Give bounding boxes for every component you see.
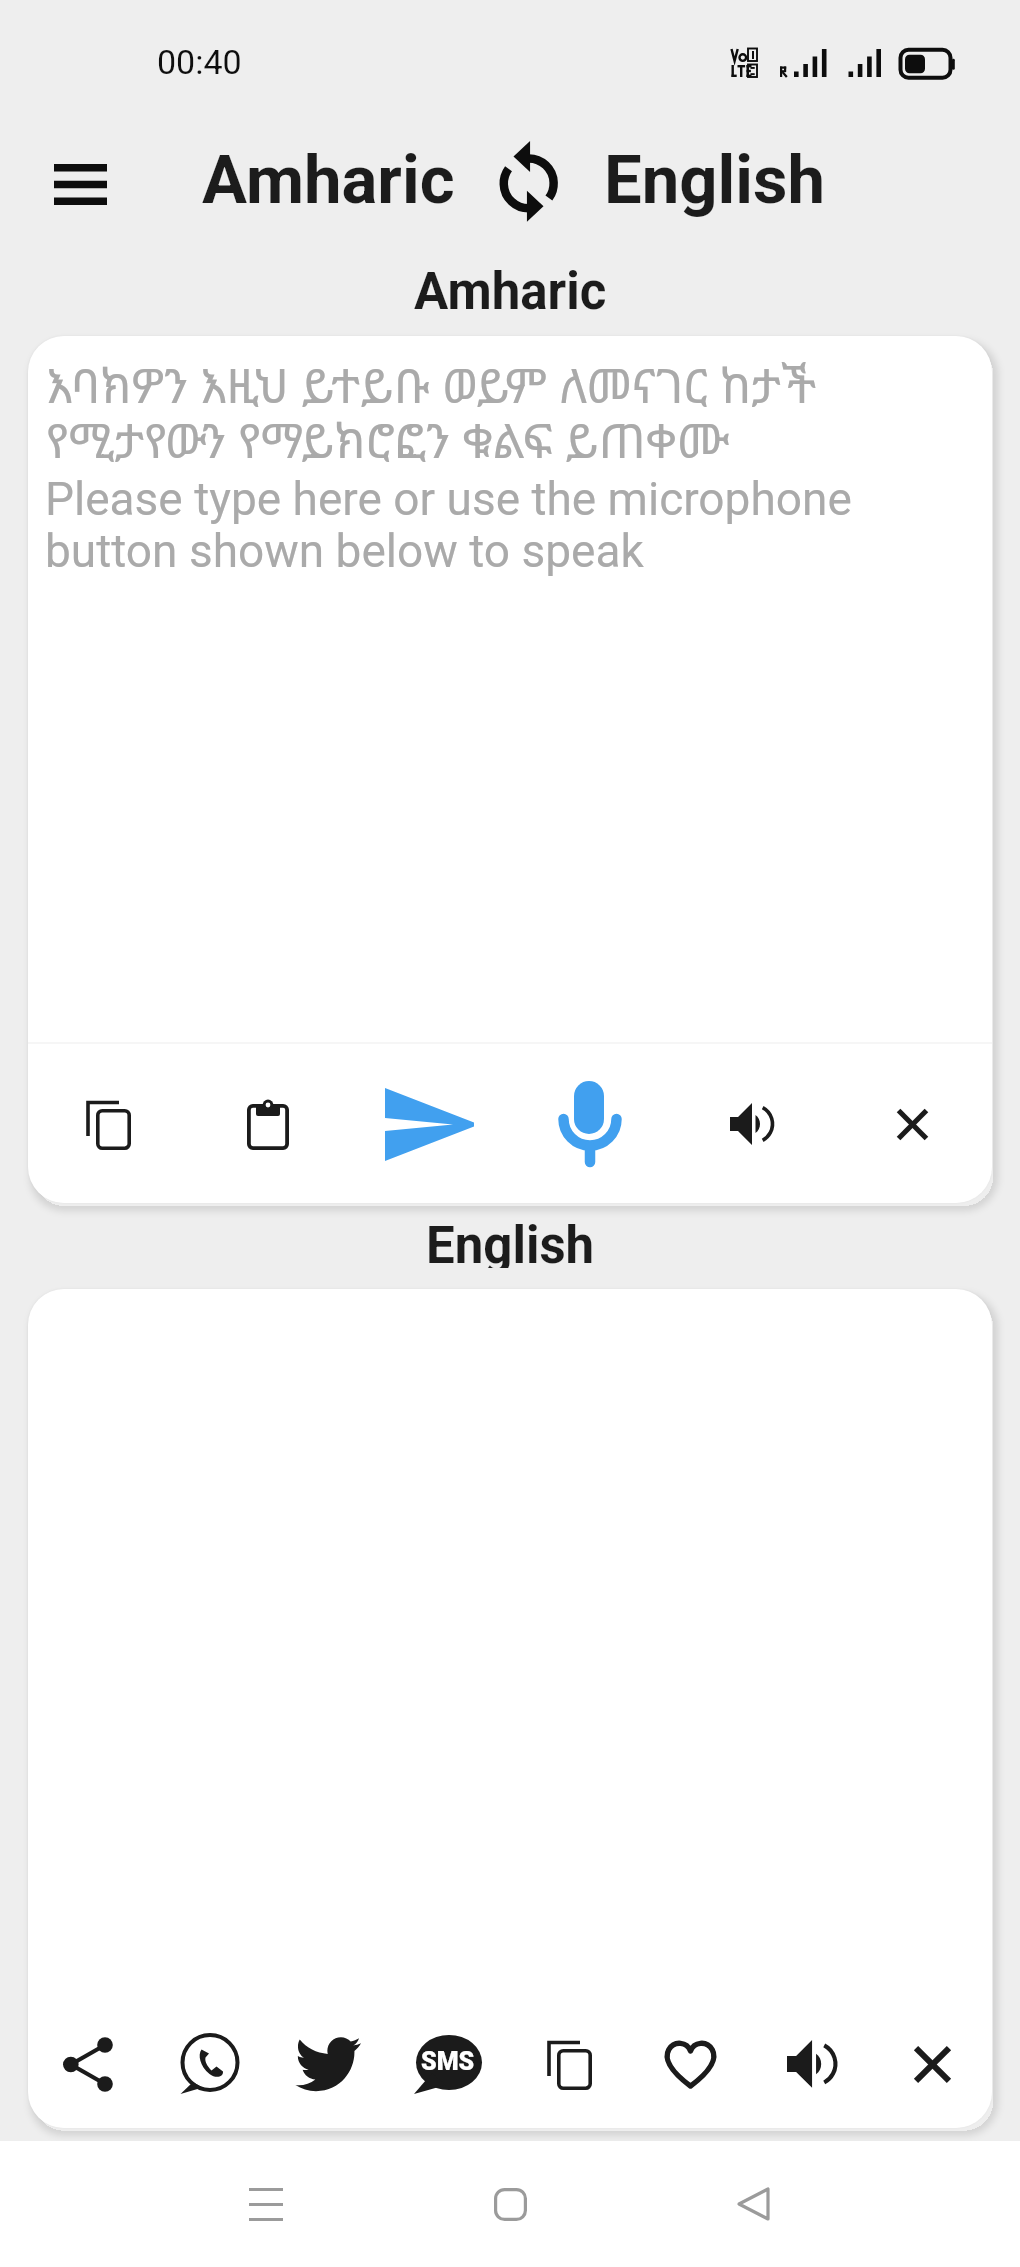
button[interactable]: Back <box>697 2148 809 2260</box>
button[interactable]: Clear <box>880 2012 984 2116</box>
button[interactable]: Share <box>36 2012 140 2116</box>
button[interactable]: Amharic <box>202 141 455 220</box>
staticText: Please type here or use the microphone b… <box>45 472 852 578</box>
button[interactable]: Copy <box>52 1068 164 1180</box>
staticText: እባክዎን እዚህ ይተይቡ ወይም ለመናገር ከታች <box>46 352 817 417</box>
button[interactable]: Menu <box>33 137 127 231</box>
staticText: Amharic <box>414 262 607 314</box>
button[interactable]: Swap languages <box>499 142 558 220</box>
button[interactable]: Twitter <box>276 2012 380 2116</box>
staticText: 00:40 <box>157 42 242 82</box>
button[interactable]: Favorite <box>638 2012 742 2116</box>
button[interactable]: Copy <box>517 2012 621 2116</box>
button[interactable]: SMS <box>396 2012 500 2116</box>
staticText: English <box>426 1216 595 1268</box>
button[interactable]: Paste <box>212 1068 324 1180</box>
button[interactable]: Listen <box>759 2012 863 2116</box>
button[interactable]: English <box>604 141 825 220</box>
button[interactable]: Translate <box>373 1068 485 1180</box>
button[interactable]: Clear <box>856 1068 968 1180</box>
staticText: SMS <box>421 2047 475 2076</box>
button[interactable]: WhatsApp <box>156 2012 260 2116</box>
staticText: የሚታየውን የማይክሮፎን ቁልፍ ይጠቀሙ <box>46 407 730 472</box>
button[interactable]: Recents <box>210 2148 322 2260</box>
button[interactable]: Home <box>454 2148 566 2260</box>
button[interactable]: Listen <box>695 1068 807 1180</box>
button[interactable]: Speak <box>534 1068 646 1180</box>
